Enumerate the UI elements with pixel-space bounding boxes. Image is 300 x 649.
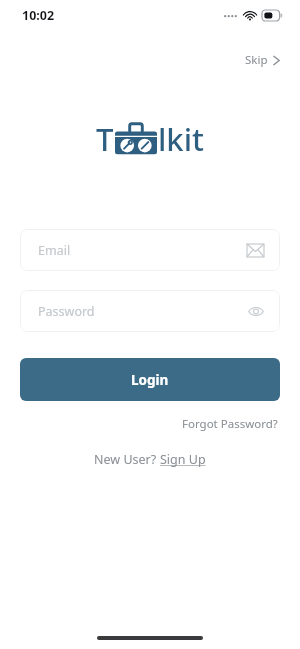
button[interactable]: Skip — [239, 48, 286, 72]
staticText: New User? — [94, 451, 160, 468]
staticText: 10:02 — [22, 7, 55, 24]
button[interactable]: Login — [20, 358, 280, 401]
staticText: Skip — [245, 52, 268, 68]
staticText: Email — [38, 242, 71, 259]
staticText: Sign Up — [160, 451, 206, 468]
staticText: Forgot Password? — [182, 416, 278, 432]
other: Email — [247, 244, 264, 257]
staticText: lkit — [158, 118, 204, 160]
other: Show password — [248, 306, 264, 317]
button[interactable]: Email — [20, 229, 280, 271]
button[interactable]: Forgot Password? — [178, 412, 282, 436]
button[interactable]: Sign Up — [160, 451, 206, 468]
staticText: T — [96, 118, 114, 160]
button[interactable]: Password — [20, 290, 280, 332]
staticText: Password — [38, 303, 95, 320]
staticText: Login — [131, 371, 169, 389]
